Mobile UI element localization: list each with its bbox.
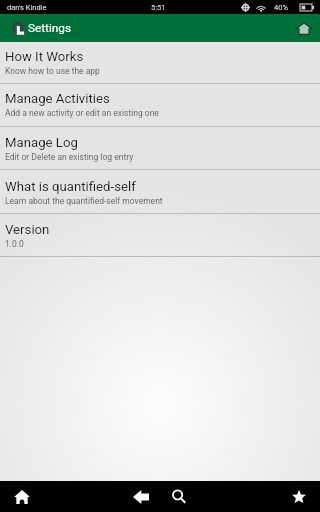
staticText: Learn about the quantified-self movement bbox=[5, 196, 163, 206]
button[interactable]: How It Works bbox=[0, 42, 320, 83]
button[interactable]: What is quantified-self bbox=[0, 170, 320, 213]
staticText: How It Works bbox=[5, 49, 84, 64]
staticText: Version bbox=[5, 222, 50, 237]
staticText: Add a new activity or edit an existing o… bbox=[5, 108, 159, 118]
button[interactable]: Home bbox=[288, 14, 320, 42]
staticText: 5:51 bbox=[151, 3, 166, 12]
button[interactable]: Version bbox=[0, 214, 320, 256]
staticText: Settings bbox=[28, 21, 72, 35]
staticText: dan's Kindle bbox=[7, 3, 47, 12]
button[interactable]: Manage Activities bbox=[0, 84, 320, 126]
button[interactable]: Search bbox=[166, 484, 192, 509]
staticText: 40% bbox=[274, 3, 288, 12]
button[interactable]: Manage Log bbox=[0, 127, 320, 169]
staticText: 1.0.0 bbox=[5, 239, 24, 249]
staticText: Manage Activities bbox=[5, 91, 110, 106]
staticText: What is quantified-self bbox=[5, 179, 136, 194]
staticText: Manage Log bbox=[5, 135, 78, 150]
button[interactable]: Back bbox=[127, 484, 154, 509]
staticText: Edit or Delete an existing log entry bbox=[5, 152, 134, 162]
button[interactable]: Favorites bbox=[286, 484, 312, 509]
staticText: Know how to use the app bbox=[5, 66, 100, 76]
button[interactable]: Home bbox=[8, 484, 36, 509]
